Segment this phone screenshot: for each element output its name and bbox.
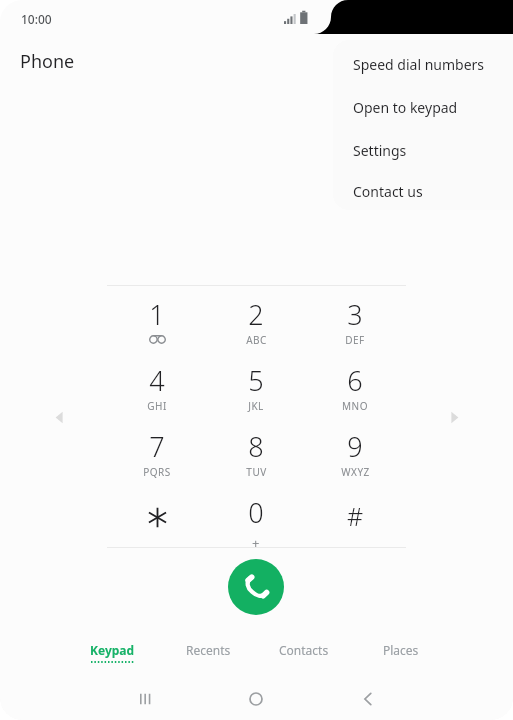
staticText: 7	[149, 428, 165, 465]
staticText: 5	[248, 362, 264, 399]
button[interactable]: Keypad	[64, 633, 160, 669]
staticText: 10:00	[21, 11, 52, 27]
button[interactable]: Places	[353, 633, 449, 669]
button[interactable]: 8	[210, 428, 302, 484]
staticText: +	[252, 534, 260, 550]
staticText: 3	[347, 296, 363, 333]
button[interactable]: Next page	[442, 405, 466, 429]
button[interactable]: 7	[111, 428, 203, 484]
button[interactable]: Recent apps	[122, 686, 168, 712]
staticText: Recents	[186, 642, 231, 658]
staticText: WXYZ	[341, 465, 370, 479]
button[interactable]: Recents	[160, 633, 256, 669]
staticText: Settings	[353, 141, 407, 160]
staticText: 2	[248, 296, 264, 333]
staticText: Places	[383, 642, 419, 658]
staticText: 0	[248, 494, 264, 531]
staticText: Open to keypad	[353, 98, 458, 117]
button[interactable]: 9	[309, 428, 401, 484]
staticText: 9	[347, 428, 363, 465]
button[interactable]: Contacts	[256, 633, 352, 669]
button[interactable]: 2	[210, 296, 302, 352]
staticText: GHI	[147, 399, 167, 413]
staticText: 6	[347, 362, 363, 399]
staticText: #	[347, 499, 364, 533]
button[interactable]: #	[309, 494, 401, 550]
staticText: Phone	[20, 49, 75, 74]
button[interactable]	[111, 494, 203, 550]
staticText: Speed dial numbers	[353, 55, 485, 74]
button[interactable]: Back	[345, 686, 391, 712]
button[interactable]: Open to keypad	[333, 86, 513, 129]
staticText: PQRS	[143, 465, 171, 479]
staticText: Contacts	[279, 642, 329, 658]
button[interactable]: 3	[309, 296, 401, 352]
staticText: ABC	[246, 333, 267, 347]
button[interactable]: Speed dial numbers	[333, 43, 513, 86]
staticText: TUV	[246, 465, 267, 479]
button[interactable]: 4	[111, 362, 203, 418]
staticText: 1	[149, 296, 165, 333]
staticText: Contact us	[353, 182, 423, 201]
button[interactable]: Contact us	[333, 172, 513, 210]
staticText: 8	[248, 428, 264, 465]
staticText: DEF	[345, 333, 365, 347]
staticText: 4	[149, 362, 165, 399]
button[interactable]: 6	[309, 362, 401, 418]
button[interactable]: Home	[233, 686, 279, 712]
button[interactable]: Settings	[333, 129, 513, 172]
button[interactable]: 5	[210, 362, 302, 418]
button[interactable]: Call	[228, 559, 284, 615]
staticText: MNO	[342, 399, 368, 413]
staticText: JKL	[248, 399, 264, 413]
button[interactable]: Previous page	[47, 405, 71, 429]
button[interactable]: 1	[111, 296, 203, 352]
button[interactable]: 0	[210, 494, 302, 550]
staticText: Keypad	[90, 642, 135, 658]
